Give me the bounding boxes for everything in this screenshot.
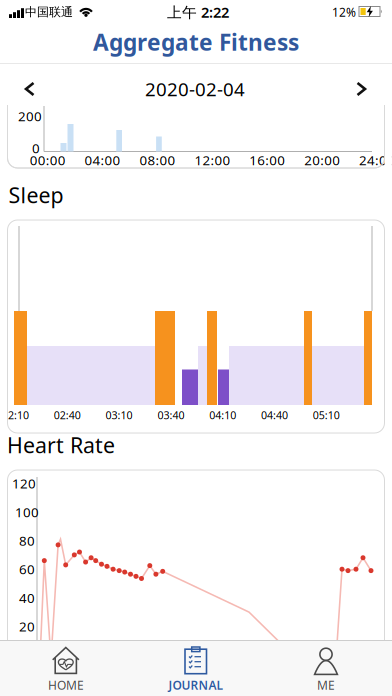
- staticText: 04:00: [85, 151, 121, 169]
- staticText: JOURNAL: [168, 677, 223, 693]
- staticText: 2020-02-04: [145, 77, 245, 101]
- staticText: 04:10: [209, 408, 236, 422]
- staticText: 00:00: [30, 151, 66, 169]
- button[interactable]: Previous day: [8, 72, 52, 106]
- staticText: 24:00: [359, 151, 392, 169]
- staticText: 200: [18, 107, 42, 125]
- staticText: HOME: [48, 677, 84, 693]
- staticText: 03:40: [157, 408, 184, 422]
- staticText: 12:00: [194, 151, 230, 169]
- staticText: 02:10: [2, 408, 29, 422]
- staticText: 12%: [332, 4, 356, 20]
- button[interactable]: Next day: [339, 72, 383, 106]
- staticText: 02:40: [54, 408, 81, 422]
- staticText: 03:10: [106, 408, 133, 422]
- staticText: 100: [15, 503, 39, 521]
- staticText: 08:00: [139, 151, 175, 169]
- staticText: 60: [19, 560, 35, 578]
- staticText: 16:00: [249, 151, 285, 169]
- staticText: ME: [317, 677, 335, 693]
- staticText: Sleep: [8, 181, 63, 209]
- staticText: 上午 2:22: [167, 2, 229, 22]
- staticText: Aggregate Fitness: [93, 27, 299, 57]
- staticText: 120: [12, 474, 36, 492]
- staticText: 20: [19, 617, 35, 635]
- staticText: Heart Rate: [7, 431, 115, 459]
- button[interactable]: ME: [261, 646, 391, 694]
- button[interactable]: JOURNAL: [131, 646, 261, 694]
- staticText: 80: [19, 532, 35, 549]
- staticText: 20:00: [304, 151, 340, 169]
- staticText: 中国联通: [25, 5, 73, 19]
- button[interactable]: HOME: [1, 646, 131, 694]
- staticText: 0: [32, 139, 40, 157]
- staticText: 04:40: [261, 408, 288, 422]
- staticText: 40: [19, 589, 35, 607]
- staticText: 05:10: [313, 408, 340, 422]
